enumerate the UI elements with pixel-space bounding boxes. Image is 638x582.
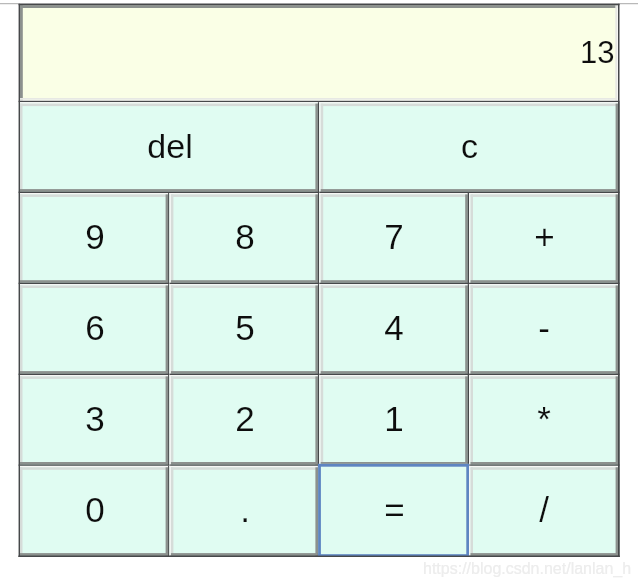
staticText: = (384, 490, 405, 529)
staticText: 6 (85, 308, 105, 347)
staticText: 9 (85, 217, 105, 256)
staticText: + (534, 217, 555, 256)
button[interactable]: - (469, 284, 619, 375)
button[interactable]: 6 (19, 284, 170, 375)
staticText: 0 (85, 490, 105, 529)
button[interactable]: / (469, 466, 619, 557)
button[interactable]: 8 (170, 193, 320, 284)
button[interactable]: 13 (19, 4, 620, 102)
staticText: * (537, 399, 551, 438)
staticText: 7 (384, 217, 404, 256)
button[interactable]: . (170, 466, 320, 557)
staticText: / (539, 490, 549, 529)
button[interactable]: = (319, 466, 469, 557)
button[interactable]: 1 (319, 375, 469, 466)
button[interactable]: 5 (170, 284, 320, 375)
staticText: 4 (384, 308, 404, 347)
button[interactable]: c (319, 102, 619, 193)
button[interactable]: 4 (319, 284, 469, 375)
staticText: 5 (235, 308, 255, 347)
staticText: 13 (580, 35, 615, 70)
staticText: https://blog.csdn.net/lanlan_h (423, 560, 632, 578)
staticText: - (538, 308, 550, 347)
button[interactable]: * (469, 375, 619, 466)
button[interactable]: 3 (19, 375, 170, 466)
button[interactable]: del (19, 102, 320, 193)
staticText: 3 (85, 399, 105, 438)
staticText: del (147, 127, 193, 165)
button[interactable]: 7 (319, 193, 469, 284)
button[interactable]: + (469, 193, 619, 284)
button[interactable]: 9 (19, 193, 170, 284)
staticText: c (461, 127, 478, 165)
staticText: 8 (235, 217, 255, 256)
staticText: . (240, 490, 250, 529)
staticText: 1 (384, 399, 404, 438)
staticText: 2 (235, 399, 255, 438)
button[interactable]: 0 (19, 466, 170, 557)
button[interactable]: 2 (170, 375, 320, 466)
